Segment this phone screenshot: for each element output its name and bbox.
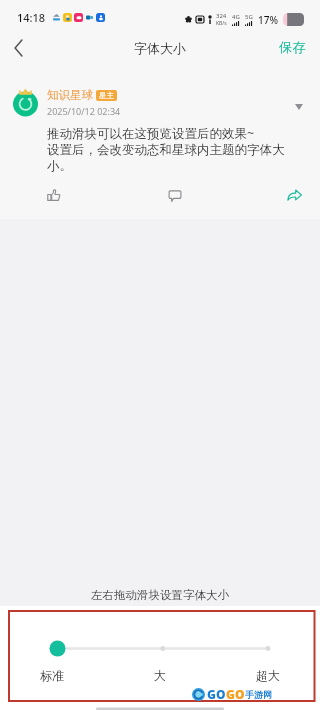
staticText: 324 [216,12,227,20]
button[interactable]: Share [281,183,307,207]
staticText: 17% [258,13,278,27]
button[interactable]: 保存 [265,31,320,64]
staticText: 知识星球 [47,88,93,102]
staticText: 标准 [40,668,64,683]
staticText: 14:18 [17,10,46,25]
staticText: 大 [154,668,166,683]
staticText: 手游网 [245,689,272,700]
button[interactable]: More options [288,96,310,118]
staticText: 字体大小 [134,40,186,56]
staticText: KB/s [216,20,227,27]
staticText: 星主 [99,91,114,100]
staticText: 4G [232,13,240,21]
button[interactable]: Like [40,183,66,207]
button[interactable]: Comment [162,183,188,207]
staticText: 超大 [256,668,280,683]
staticText: 左右拖动滑块设置字体大小 [0,588,320,602]
staticText: 保存 [279,39,306,56]
staticText: 5G [245,13,253,21]
staticText: GO [207,686,226,702]
staticText: 2025/10/12 02:34 [47,105,121,117]
button[interactable]: Back [0,31,36,64]
staticText: 推动滑块可以在这预览设置后的效果~ 设置后，会改变动态和星球内主题的字体大小。 [47,125,289,174]
staticText: GO [226,686,245,702]
